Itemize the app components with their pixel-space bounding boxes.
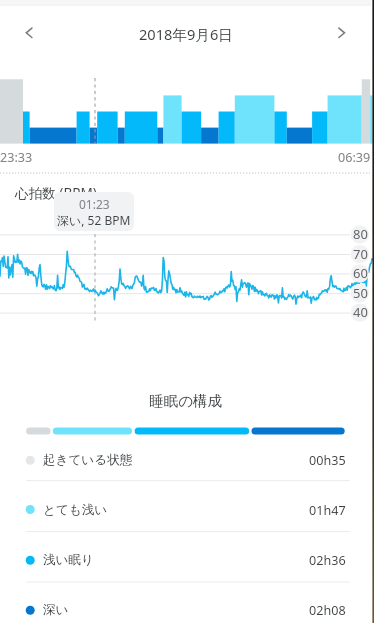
staticText: 浅い眠り bbox=[43, 552, 94, 568]
staticText: 02h36 bbox=[309, 552, 346, 569]
staticText: 01h47 bbox=[309, 502, 346, 519]
button[interactable]: とても浅い bbox=[0, 485, 374, 535]
button[interactable]: 浅い眠り bbox=[0, 535, 374, 585]
staticText: 23:33 bbox=[0, 149, 33, 166]
button[interactable]: Previous day bbox=[13, 17, 45, 49]
staticText: 00h35 bbox=[309, 452, 346, 469]
staticText: とても浅い bbox=[43, 502, 108, 518]
staticText: 起きている状態 bbox=[43, 452, 133, 468]
staticText: 深い, 52 BPM bbox=[57, 212, 131, 228]
staticText: 深い bbox=[43, 602, 69, 618]
staticText: 06:39 bbox=[338, 149, 371, 166]
staticText: 2018年9月6日 bbox=[139, 24, 233, 44]
staticText: 80 bbox=[353, 225, 368, 243]
staticText: 40 bbox=[353, 303, 368, 321]
staticText: 02h08 bbox=[309, 602, 346, 619]
staticText: 睡眠の構成 bbox=[149, 392, 223, 410]
button[interactable]: 起きている状態 bbox=[0, 435, 374, 485]
staticText: 心拍数 (BPM) bbox=[15, 183, 97, 202]
button[interactable]: Next day bbox=[326, 17, 358, 49]
staticText: 50 bbox=[353, 284, 368, 302]
staticText: 01:23 bbox=[79, 196, 110, 212]
button[interactable]: 深い bbox=[0, 585, 374, 623]
staticText: 70 bbox=[353, 245, 368, 263]
staticText: 60 bbox=[353, 264, 368, 282]
